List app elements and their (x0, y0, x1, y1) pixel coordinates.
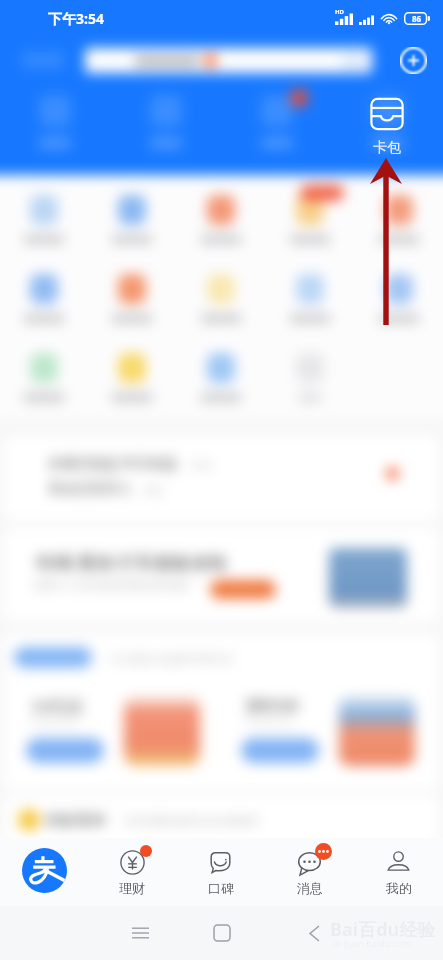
staticText: 卡包 (373, 139, 401, 157)
staticText: 余额宝收益 昨日收益 (48, 453, 178, 472)
button[interactable]: 支付宝 首页 (0, 838, 88, 906)
button[interactable]: Back (290, 906, 338, 960)
staticText: 86 (412, 13, 422, 24)
staticText: 消息 (297, 880, 323, 896)
staticText: 蚂蚁森林 (46, 811, 106, 830)
staticText: 口碑 (208, 880, 234, 896)
staticText: Bai百du经验 (330, 917, 436, 942)
button[interactable]: 理财 (88, 838, 176, 906)
staticText: 限时5折 (247, 695, 301, 715)
staticText: 基金定投买入 (48, 480, 132, 498)
button[interactable]: 消息 (265, 838, 354, 906)
staticText: 我的 (386, 880, 412, 896)
staticText: 超值优惠专区 (245, 716, 293, 726)
button[interactable]: Home (198, 906, 246, 960)
button[interactable]: 口碑 (176, 838, 265, 906)
staticText: 超值优惠专区 (30, 716, 78, 726)
staticText: 吃喝 看病 打车都能省钱 (37, 550, 227, 575)
staticText: HD (335, 8, 344, 16)
staticText: 理财 (119, 880, 145, 896)
button[interactable]: 卡包 (364, 96, 410, 157)
button[interactable]: 添加 (396, 43, 430, 77)
button[interactable]: Recents (116, 906, 164, 960)
staticText: 下午3:54 (48, 9, 104, 28)
button[interactable]: 我的 (354, 838, 443, 906)
staticText: 3.8元起 (32, 695, 84, 715)
